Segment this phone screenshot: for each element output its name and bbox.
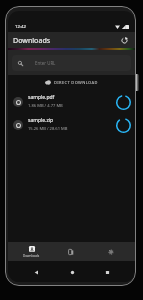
button[interactable]: Enter URL	[12, 55, 131, 71]
staticText: Enter URL	[35, 60, 56, 66]
button[interactable]: Refresh	[118, 34, 131, 47]
staticText: Downloads	[23, 254, 40, 258]
staticText: DIRECT DOWNLOAD	[54, 80, 98, 85]
staticText: Downloads	[13, 35, 51, 45]
button[interactable]: Back	[28, 264, 44, 280]
staticText: sample.pdf	[28, 94, 55, 101]
staticText: 12:42	[15, 23, 26, 29]
button[interactable]: sample.pdf	[8, 90, 135, 113]
staticText: 1.86 MB / 4.77 MB	[28, 103, 63, 109]
button[interactable]: Recents	[99, 264, 115, 280]
staticText: 15.26 MB / 28.61 MB	[28, 126, 68, 132]
button[interactable]: Settings	[91, 242, 131, 261]
button[interactable]: Browser	[51, 242, 91, 261]
button[interactable]: Home	[64, 264, 80, 280]
button[interactable]: Downloads	[12, 242, 51, 261]
staticText: sample.zip	[28, 117, 54, 124]
button[interactable]: sample.zip	[8, 113, 135, 136]
